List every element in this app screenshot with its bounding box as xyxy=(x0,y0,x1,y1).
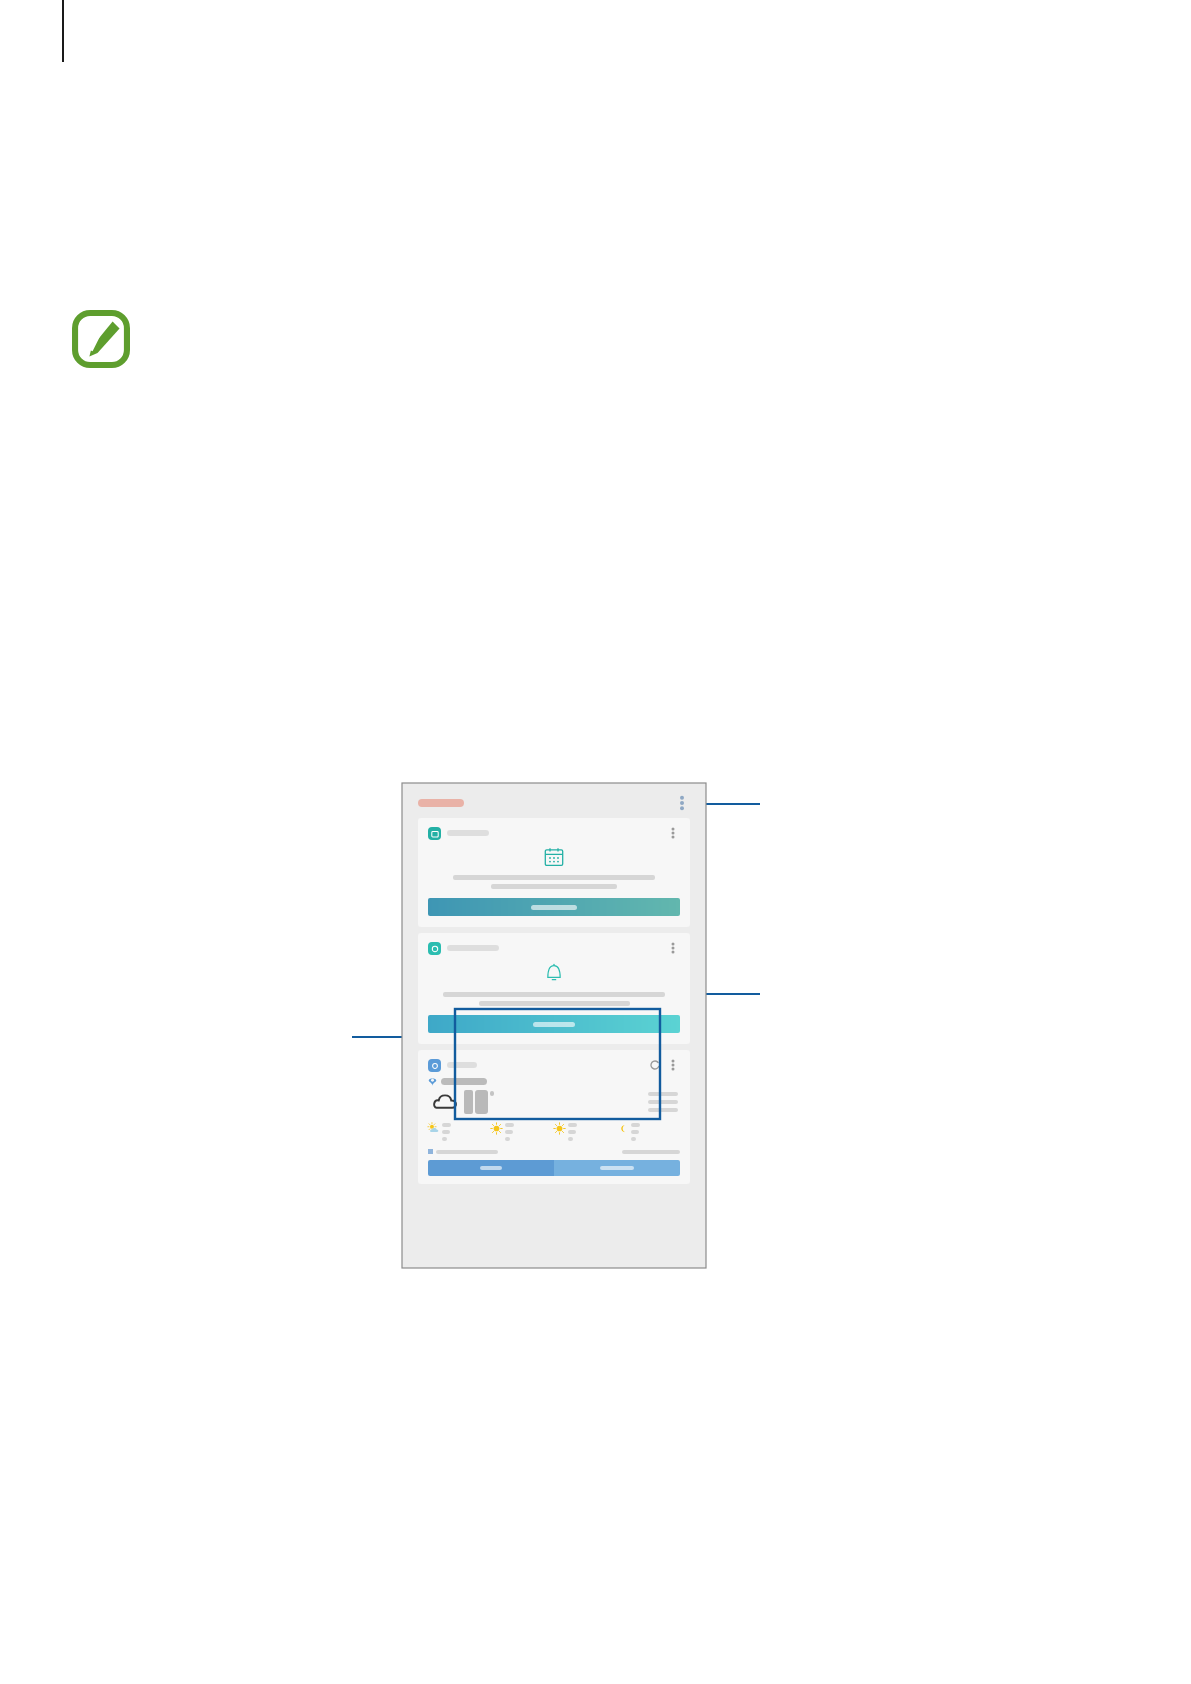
button[interactable] xyxy=(554,1160,680,1176)
button[interactable]: Card options xyxy=(418,933,690,1044)
button[interactable]: Refresh xyxy=(418,1050,690,1184)
button[interactable]: Refresh xyxy=(648,1058,662,1072)
button[interactable]: Weather options xyxy=(666,1058,680,1072)
button[interactable] xyxy=(428,1160,554,1176)
button[interactable] xyxy=(428,1015,680,1033)
button[interactable]: Card options xyxy=(666,826,680,840)
button[interactable]: Card options xyxy=(666,941,680,955)
button[interactable]: More options xyxy=(674,795,690,811)
button[interactable]: Card options xyxy=(418,818,690,927)
button[interactable] xyxy=(428,898,680,916)
